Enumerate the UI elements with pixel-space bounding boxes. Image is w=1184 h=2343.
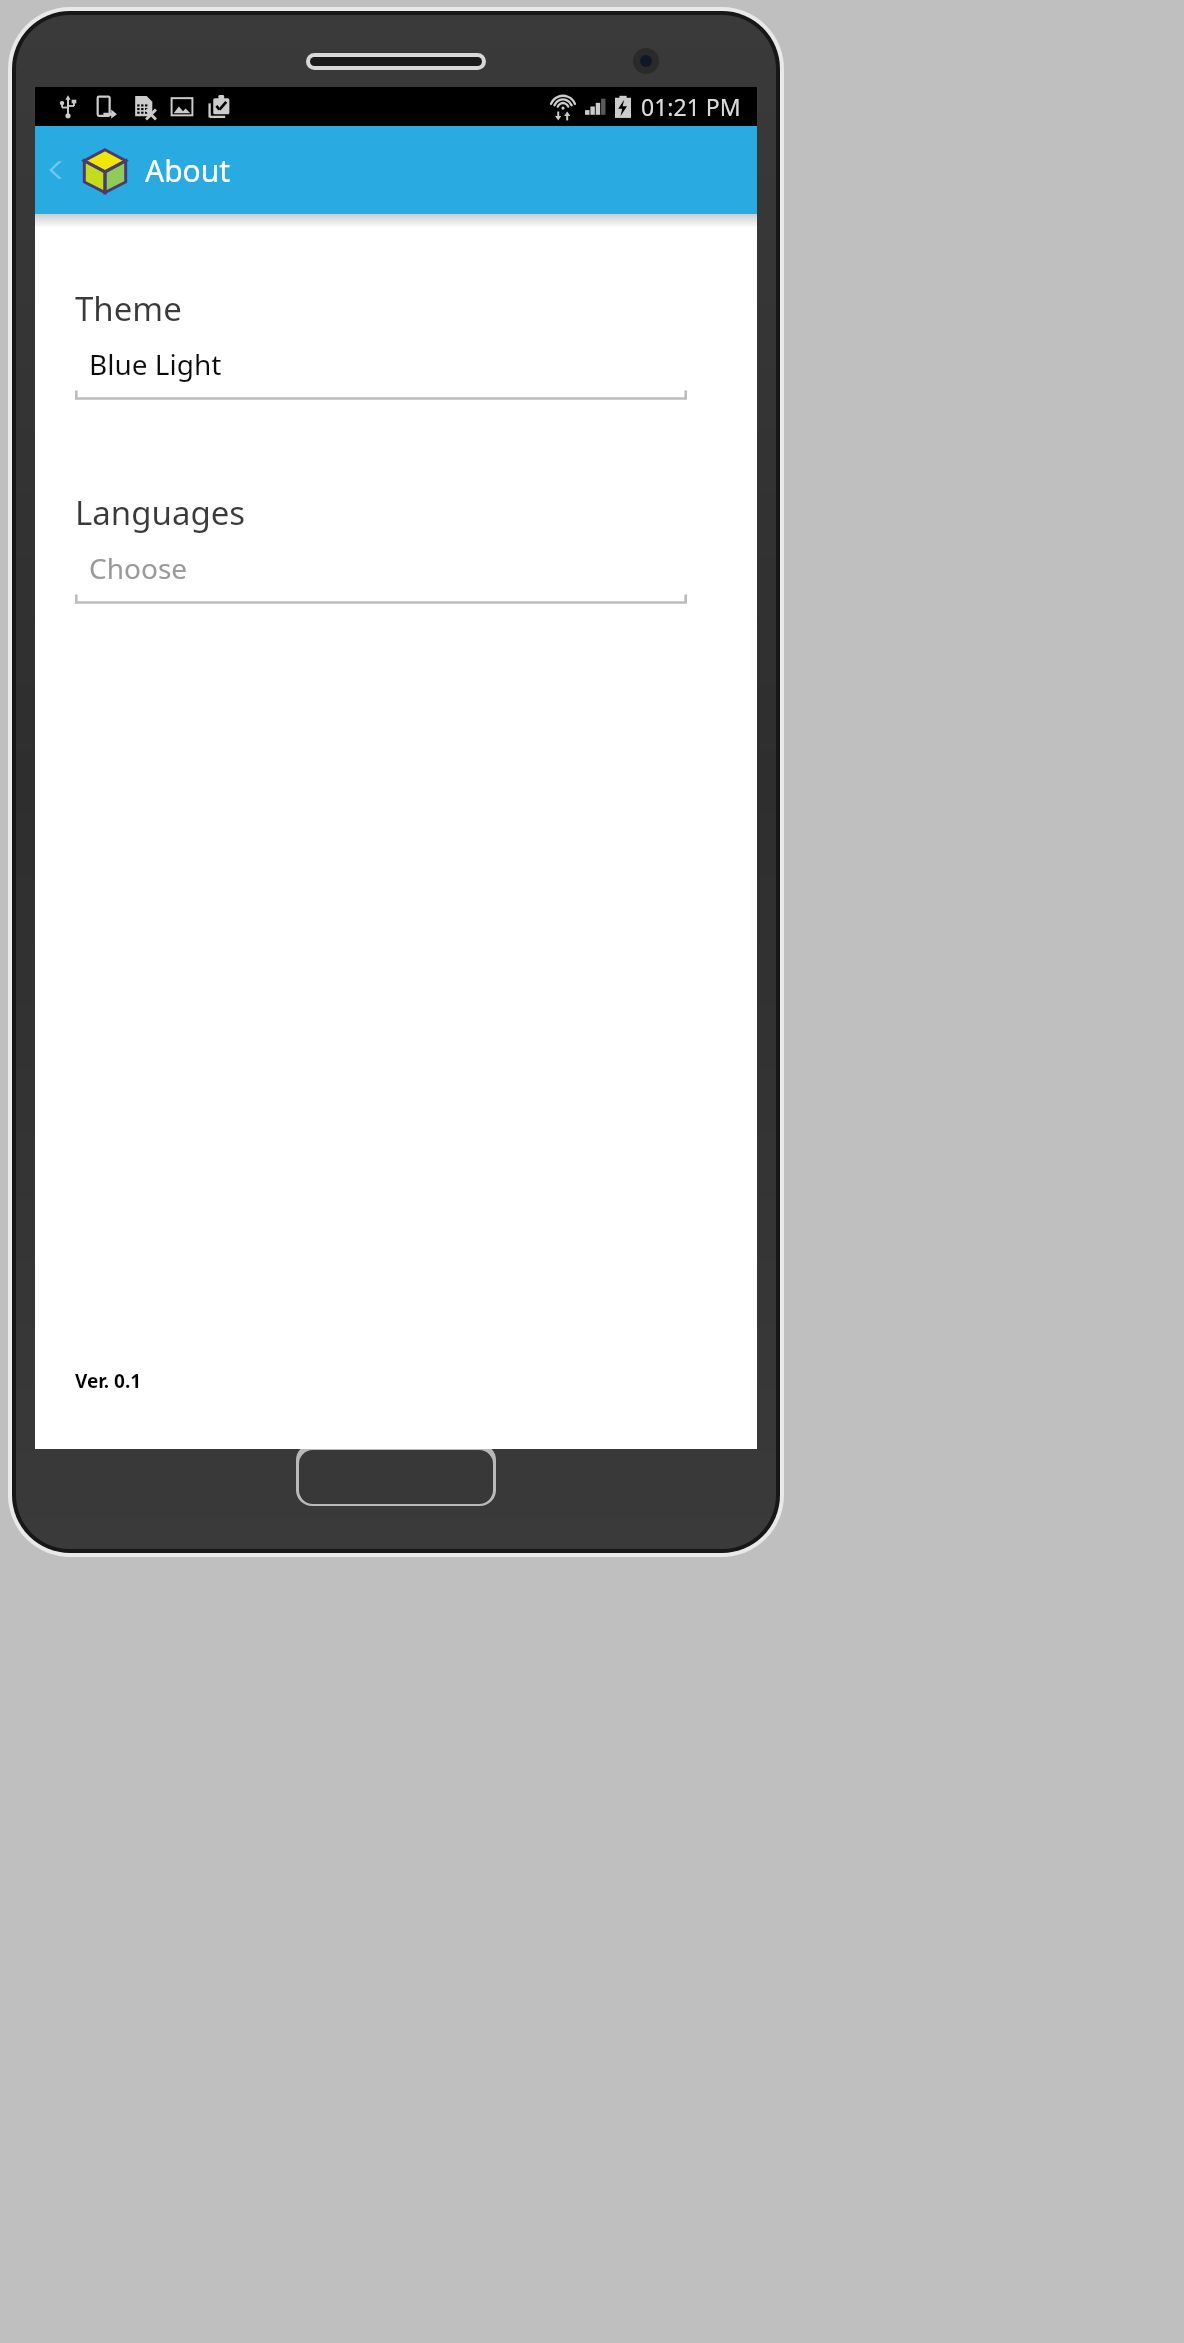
button[interactable]: Blue Light xyxy=(75,345,687,400)
button[interactable]: Choose xyxy=(75,549,687,604)
staticText: Ver. 0.1 xyxy=(75,1368,142,1394)
button[interactable]: App logo xyxy=(79,144,131,196)
staticText: 01:21 PM xyxy=(641,91,741,122)
staticText: About xyxy=(145,150,231,191)
staticText: Blue Light xyxy=(89,345,222,383)
staticText: Choose xyxy=(89,549,188,587)
button[interactable]: Home xyxy=(296,1444,496,1506)
button[interactable]: Back xyxy=(35,126,79,214)
staticText: Languages xyxy=(75,490,246,535)
staticText: Theme xyxy=(75,286,182,331)
